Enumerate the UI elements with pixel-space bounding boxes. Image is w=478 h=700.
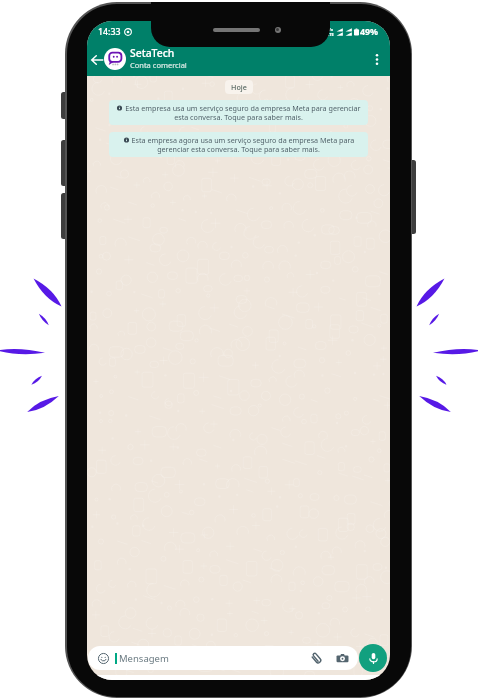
staticText: * Esta empresa agora usa um serviço segu… [114, 135, 363, 154]
button[interactable]: * Esta empresa usa um serviço seguro da … [109, 100, 368, 125]
button[interactable]: Mais opções [366, 48, 388, 70]
staticText: 49% [360, 26, 378, 38]
staticText: Vo [328, 27, 334, 32]
staticText: SetaTech [130, 46, 175, 60]
staticText: LTE [327, 32, 334, 37]
button[interactable]: Anexar [310, 652, 323, 665]
staticText: Hoje [231, 82, 247, 92]
staticText: * Esta empresa usa um serviço seguro da … [114, 103, 363, 122]
staticText: Mensagem [119, 652, 310, 665]
button[interactable]: * Esta empresa agora usa um serviço segu… [109, 132, 368, 157]
button[interactable]: Voltar [88, 49, 105, 69]
staticText: Conta comercial [130, 60, 187, 70]
button[interactable]: Câmera [336, 652, 349, 665]
button[interactable]: Hoje [225, 80, 253, 94]
button[interactable]: Mensagem [88, 646, 358, 670]
button[interactable] [104, 48, 126, 70]
staticText: 14:33 [98, 26, 121, 38]
button[interactable]: Mensagem de voz [359, 644, 387, 672]
